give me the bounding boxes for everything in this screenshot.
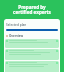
staticText: Overview [9,34,24,38]
staticText: Selected plan [6,23,27,27]
button[interactable] [5,49,59,60]
staticText: Prepared by certified experts [0,4,64,15]
button[interactable]: Continue [6,29,58,31]
button[interactable] [5,61,59,72]
button[interactable] [5,39,59,48]
